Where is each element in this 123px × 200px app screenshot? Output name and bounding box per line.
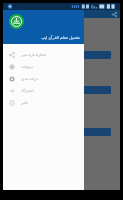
button[interactable] — [12, 51, 111, 59]
staticText: باہر — [21, 100, 28, 105]
button[interactable] — [12, 128, 111, 136]
button[interactable]: اشتراک — [3, 84, 84, 96]
button[interactable]: ہمارے بارے میں — [3, 48, 84, 60]
button[interactable]: باہر — [3, 96, 84, 108]
staticText: ترتیبات — [21, 64, 33, 69]
button[interactable]: Share — [111, 11, 118, 18]
staticText: اشتراک — [21, 88, 34, 93]
staticText: تفصیل معلم القرآن ایپ — [41, 35, 80, 40]
button[interactable] — [12, 86, 111, 94]
button[interactable]: درجہ بندی — [3, 72, 84, 84]
staticText: ہمارے بارے میں — [21, 52, 47, 57]
staticText: درجہ بندی — [21, 76, 39, 81]
button[interactable]: ترتیبات — [3, 60, 84, 72]
